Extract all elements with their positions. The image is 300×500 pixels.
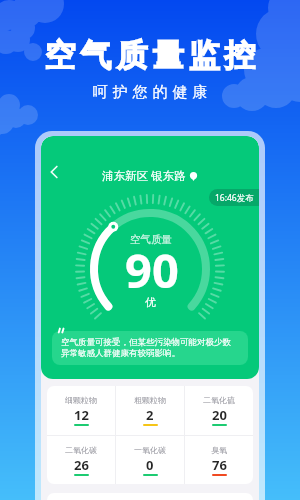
- button[interactable]: Back: [42, 160, 66, 184]
- staticText: 二氧化碳: [65, 445, 97, 455]
- button[interactable]: 粗颗粒物: [116, 386, 184, 435]
- staticText: 2: [146, 406, 154, 424]
- button[interactable]: 二氧化硫: [185, 386, 253, 435]
- staticText: 16:46发布: [215, 192, 254, 204]
- staticText: 90: [125, 238, 179, 302]
- staticText: 空气质量: [130, 233, 172, 246]
- staticText: 12: [74, 406, 89, 424]
- staticText: 粗颗粒物: [134, 395, 166, 405]
- button[interactable]: 二氧化碳: [47, 436, 115, 484]
- staticText: 26: [74, 456, 89, 474]
- staticText: 优: [145, 295, 156, 309]
- button[interactable]: 一氧化碳: [116, 436, 184, 484]
- staticText: 呵护您的健康: [90, 83, 210, 102]
- staticText: 空气质量可接受，但某些污染物可能对极少数异常敏感人群健康有较弱影响。: [61, 337, 239, 359]
- staticText: 浦东新区 银东路: [102, 168, 186, 184]
- staticText: 二氧化硫: [203, 395, 235, 405]
- staticText: 0: [146, 456, 154, 474]
- button[interactable]: 16:46发布: [209, 189, 259, 206]
- staticText: 臭氧: [211, 445, 227, 455]
- staticText: 一氧化碳: [134, 445, 166, 455]
- button[interactable]: 臭氧: [185, 436, 253, 484]
- staticText: 空气质量监控: [42, 36, 258, 75]
- staticText: 20: [212, 406, 227, 424]
- button[interactable]: 细颗粒物: [47, 386, 115, 435]
- staticText: 76: [212, 456, 227, 474]
- staticText: 细颗粒物: [65, 395, 97, 405]
